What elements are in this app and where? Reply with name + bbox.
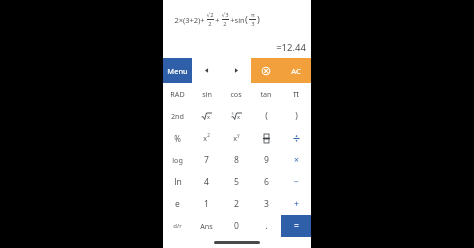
button[interactable]: 4 (192, 171, 221, 193)
button[interactable]: . (251, 215, 281, 237)
button[interactable]: 7 (192, 149, 221, 171)
button[interactable]: + (281, 193, 311, 215)
staticText: x (207, 113, 210, 120)
staticText: e (175, 198, 180, 210)
staticText: Ans (200, 221, 213, 231)
staticText: 8 (234, 154, 239, 166)
button[interactable]: 8 (221, 149, 251, 171)
staticText: ( (265, 110, 268, 122)
staticText: 9 (264, 154, 269, 166)
button[interactable]: 2nd (163, 105, 192, 127)
button[interactable] (281, 127, 311, 149)
staticText: 2 (223, 20, 227, 28)
staticText: π (293, 88, 299, 100)
button[interactable]: 0 (221, 215, 251, 237)
staticText: tan (260, 89, 272, 99)
staticText: √3 (221, 11, 229, 19)
staticText: RAD (170, 89, 185, 99)
staticText: 3 (231, 111, 234, 116)
button[interactable]: 6 (251, 171, 281, 193)
button[interactable]: sin (192, 83, 221, 105)
button[interactable]: AC (281, 58, 311, 83)
button[interactable]: 9 (251, 149, 281, 171)
button[interactable]: x (192, 127, 221, 149)
button[interactable]: × (281, 149, 311, 171)
staticText: x (233, 134, 237, 144)
button[interactable]: tan (251, 83, 281, 105)
button[interactable]: Menu (163, 58, 192, 83)
button[interactable]: x (221, 105, 251, 127)
staticText: 2 (207, 132, 210, 138)
staticText: 2 (208, 20, 212, 28)
button[interactable]: x (221, 127, 251, 149)
button[interactable]: ( (251, 105, 281, 127)
button[interactable]: RAD (163, 83, 192, 105)
staticText: +sin (230, 15, 245, 25)
staticText: cos (230, 89, 242, 99)
staticText: 1 (204, 198, 209, 210)
button[interactable]: % (163, 127, 192, 149)
staticText: sin (202, 89, 212, 99)
button[interactable]: 1 (192, 193, 221, 215)
button[interactable]: − (281, 171, 311, 193)
button[interactable]: π (281, 83, 311, 105)
staticText: + (294, 198, 299, 210)
button[interactable]: ) (281, 105, 311, 127)
staticText: 7 (204, 154, 209, 166)
staticText: ) (295, 110, 298, 122)
staticText: = (294, 220, 299, 232)
button[interactable]: Ans (192, 215, 221, 237)
button[interactable] (251, 127, 281, 149)
button[interactable]: 2 (221, 193, 251, 215)
staticText: 5 (234, 176, 239, 188)
staticText: 2nd (171, 111, 184, 121)
staticText: y (237, 132, 240, 138)
staticText: − (294, 176, 299, 188)
staticText: 0 (234, 220, 239, 232)
staticText: 6 (264, 176, 269, 188)
button[interactable]: = (281, 215, 311, 237)
staticText: Menu (167, 66, 188, 76)
button[interactable]: x (192, 105, 221, 127)
button[interactable]: 5 (221, 171, 251, 193)
staticText: × (294, 154, 299, 166)
staticText: 4 (204, 176, 209, 188)
button[interactable]: cos (221, 83, 251, 105)
staticText: =12.44 (276, 41, 306, 54)
staticText: ln (174, 176, 182, 188)
staticText: 2 (234, 198, 239, 210)
staticText: log (172, 155, 183, 165)
button[interactable]: ln (163, 171, 192, 193)
button[interactable]: Backspace (251, 58, 281, 83)
staticText: ( (245, 13, 248, 26)
staticText: x (203, 134, 207, 144)
button[interactable]: d/r (163, 215, 192, 237)
staticText: d/r (173, 222, 182, 230)
button[interactable]: Move right (221, 58, 251, 83)
staticText: 3 (264, 198, 269, 210)
button[interactable]: Move left (192, 58, 221, 83)
staticText: + (215, 15, 220, 25)
button[interactable]: log (163, 149, 192, 171)
button[interactable]: e (163, 193, 192, 215)
staticText: π (251, 11, 255, 19)
staticText: ) (257, 13, 260, 26)
staticText: √2 (206, 11, 214, 19)
staticText: 2×(3+2)+ (174, 15, 205, 25)
staticText: x (237, 113, 240, 120)
staticText: 3 (251, 20, 255, 28)
staticText: AC (291, 66, 301, 76)
button[interactable]: 3 (251, 193, 281, 215)
staticText: % (174, 133, 181, 144)
staticText: . (265, 220, 268, 232)
